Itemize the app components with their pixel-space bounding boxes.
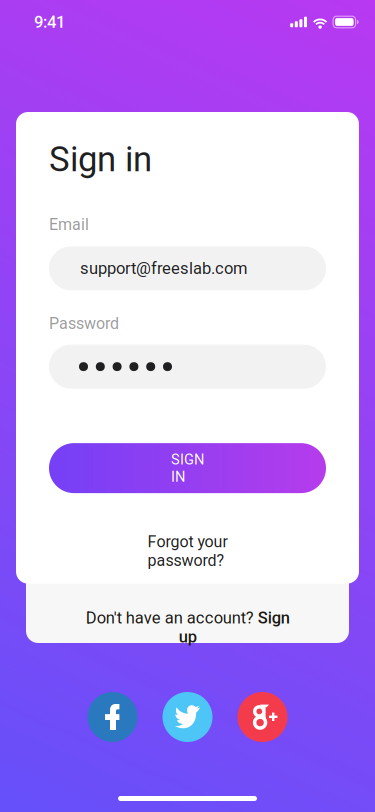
button[interactable]: Sign in with Facebook <box>87 692 137 742</box>
button[interactable]: Don't have an account? Sign up <box>26 590 349 646</box>
staticText: Don't have an account? Sign up <box>85 608 289 646</box>
button[interactable]: Sign in with Google <box>237 692 287 742</box>
staticText: SIGN IN <box>171 451 204 485</box>
staticText: Email <box>49 215 89 234</box>
button[interactable]: Forgot your password? <box>16 493 359 584</box>
staticText: 9:41 <box>34 12 65 32</box>
button[interactable]: Sign in with Twitter <box>162 692 212 742</box>
button[interactable]: SIGN IN <box>49 443 326 493</box>
staticText: Forgot your password? <box>147 532 227 570</box>
staticText: Password <box>49 314 119 333</box>
staticText: Sign in <box>49 139 152 180</box>
staticText: support@freeslab.com <box>80 259 248 278</box>
